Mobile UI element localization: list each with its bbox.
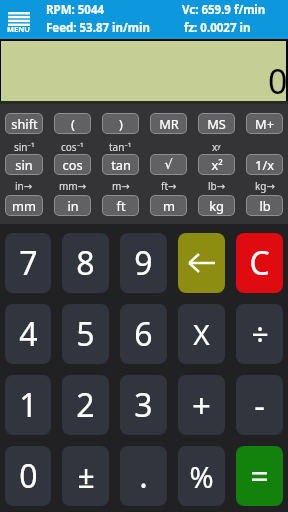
staticText: sin — [15, 156, 33, 173]
button[interactable]: ± — [62, 446, 109, 506]
staticText: Vc: 659.9 f/min — [182, 2, 266, 18]
staticText: 9 — [134, 241, 153, 285]
button[interactable]: 0 — [5, 446, 51, 506]
staticText: m→ — [112, 179, 130, 193]
staticText: + — [192, 383, 211, 428]
button[interactable]: 3 — [120, 375, 167, 435]
button[interactable]: X — [178, 304, 225, 364]
staticText: 0 — [268, 58, 288, 104]
button[interactable]: 1 — [5, 375, 51, 435]
button[interactable]: 9 — [120, 233, 167, 293]
staticText: = — [250, 454, 269, 498]
staticText: C — [249, 241, 270, 285]
staticText: mm — [12, 197, 36, 214]
staticText: fz: 0.0027 in — [184, 20, 251, 36]
staticText: kg — [209, 197, 224, 214]
staticText: % — [189, 457, 214, 496]
staticText: 3 — [134, 383, 153, 427]
button[interactable]: ft — [102, 195, 139, 216]
staticText: 7 — [19, 241, 38, 285]
button[interactable]: ÷ — [236, 304, 283, 364]
button[interactable]: kg — [198, 195, 235, 216]
staticText: in — [67, 197, 79, 214]
staticText: ( — [71, 115, 75, 132]
button[interactable]: - — [236, 375, 283, 435]
staticText: MR — [159, 115, 179, 132]
staticText: 5 — [76, 312, 95, 356]
staticText: ft — [116, 197, 126, 214]
staticText: kg→ — [255, 179, 275, 193]
staticText: 8 — [76, 241, 95, 285]
button[interactable]: Backspace — [178, 233, 225, 293]
button[interactable]: in — [54, 195, 91, 216]
button[interactable]: 1/x — [246, 154, 283, 175]
staticText: Feed: 53.87 in/min — [46, 20, 150, 36]
staticText: MS — [207, 115, 226, 132]
button[interactable]: 7 — [5, 233, 51, 293]
staticText: lb→ — [208, 179, 226, 193]
button[interactable]: lb — [246, 195, 283, 216]
staticText: ) — [119, 115, 123, 132]
staticText: x² — [211, 156, 223, 173]
staticText: lb — [259, 197, 271, 214]
staticText: 6 — [134, 312, 153, 356]
staticText: X — [193, 315, 210, 353]
staticText: 1 — [19, 383, 38, 427]
button[interactable]: √ — [150, 154, 187, 175]
button[interactable]: M+ — [246, 113, 283, 134]
button[interactable]: 8 — [62, 233, 109, 293]
staticText: ft→ — [161, 179, 177, 193]
staticText: sin⁻¹ — [14, 140, 35, 154]
staticText: in→ — [15, 179, 33, 193]
staticText: mm→ — [59, 179, 87, 193]
button[interactable]: MR — [150, 113, 187, 134]
button[interactable]: ( — [54, 113, 91, 134]
staticText: 2 — [76, 383, 95, 427]
button[interactable]: 2 — [62, 375, 109, 435]
button[interactable]: C — [236, 233, 283, 293]
staticText: 0 — [19, 454, 38, 498]
staticText: RPM: 5044 — [46, 2, 105, 18]
staticText: tan — [111, 156, 131, 173]
button[interactable]: 5 — [62, 304, 109, 364]
button[interactable]: + — [178, 375, 225, 435]
button[interactable]: sin — [5, 154, 43, 175]
button[interactable]: % — [178, 446, 225, 506]
staticText: M+ — [255, 115, 274, 132]
staticText: MENU — [7, 24, 31, 34]
button[interactable]: ) — [102, 113, 139, 134]
staticText: cos⁻¹ — [61, 140, 84, 154]
button[interactable]: mm — [5, 195, 43, 216]
staticText: ± — [77, 456, 95, 497]
staticText: m — [163, 197, 175, 214]
button[interactable]: tan — [102, 154, 139, 175]
button[interactable]: x² — [198, 154, 235, 175]
staticText: xʸ — [212, 140, 221, 154]
staticText: cos — [62, 156, 83, 173]
button[interactable]: 4 — [5, 304, 51, 364]
staticText: 1/x — [255, 156, 274, 173]
button[interactable]: . — [120, 446, 167, 506]
staticText: tan⁻¹ — [109, 140, 132, 154]
button[interactable]: Menu — [2, 10, 36, 34]
staticText: √ — [164, 157, 173, 172]
button[interactable]: = — [236, 446, 283, 506]
button[interactable]: 6 — [120, 304, 167, 364]
button[interactable]: cos — [54, 154, 91, 175]
button[interactable]: MS — [198, 113, 235, 134]
button[interactable]: m — [150, 195, 187, 216]
staticText: ÷ — [251, 314, 269, 355]
staticText: 4 — [19, 312, 38, 356]
staticText: shift — [11, 115, 38, 132]
button[interactable]: shift — [5, 113, 43, 134]
staticText: . — [139, 454, 148, 498]
staticText: - — [254, 383, 265, 428]
